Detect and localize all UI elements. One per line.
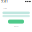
- staticText: 9:41: [1, 0, 8, 3]
- staticText: Email: [3, 8, 6, 9]
- button[interactable]: [8, 20, 24, 24]
- staticText: Sign up: [13, 26, 18, 27]
